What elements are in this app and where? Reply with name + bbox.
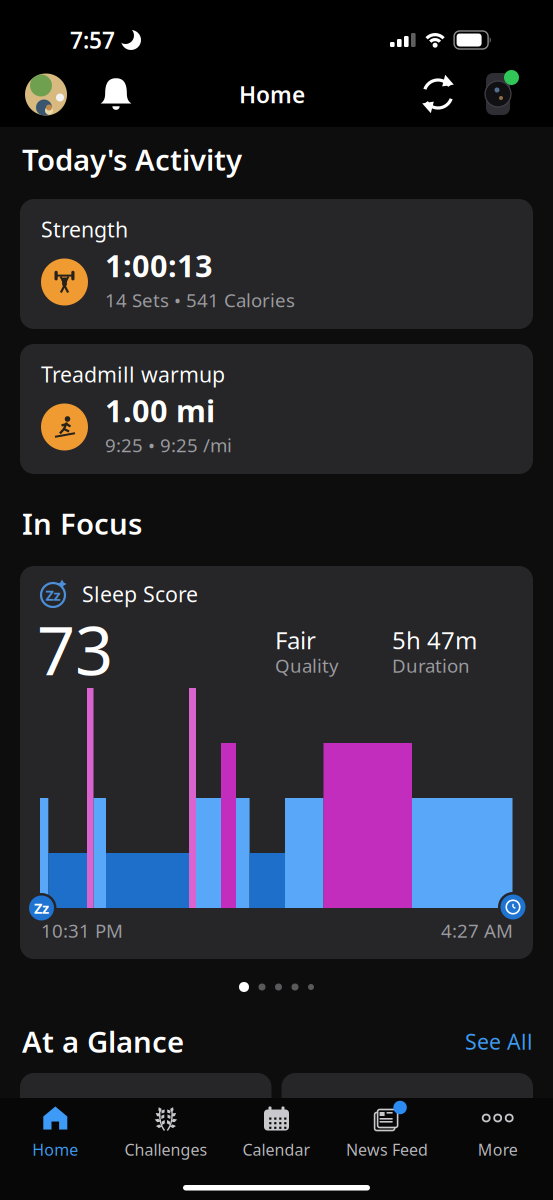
staticText: News Feed bbox=[346, 1139, 428, 1160]
staticText: Sleep Score bbox=[82, 580, 198, 608]
button[interactable]: Glance card bbox=[281, 1073, 533, 1123]
staticText: 10:31 PM bbox=[41, 918, 123, 943]
button[interactable]: News Feed bbox=[332, 1098, 442, 1160]
button[interactable]: Calendar bbox=[221, 1098, 332, 1160]
staticText: 4:27 AM bbox=[441, 918, 513, 943]
button[interactable]: Zz bbox=[20, 566, 533, 959]
button[interactable]: Notifications bbox=[94, 72, 138, 116]
button[interactable]: Glance card bbox=[20, 1073, 271, 1123]
staticText: Quality bbox=[275, 653, 339, 678]
staticText: 7:57 bbox=[70, 25, 115, 55]
staticText: Challenges bbox=[124, 1139, 207, 1160]
staticText: 5h 47m bbox=[392, 624, 477, 656]
staticText: 1:00:13 bbox=[105, 245, 213, 286]
button[interactable]: Device bbox=[483, 71, 513, 117]
staticText: Zz bbox=[34, 898, 49, 918]
button[interactable]: See All bbox=[465, 1027, 533, 1056]
button[interactable]: More bbox=[442, 1098, 553, 1160]
staticText: 1.00 mi bbox=[105, 390, 215, 431]
staticText: 9:25 • 9:25 /mi bbox=[105, 432, 232, 457]
button[interactable]: Profile bbox=[25, 73, 67, 115]
staticText: Treadmill warmup bbox=[41, 360, 225, 388]
staticText: Fair bbox=[275, 624, 316, 656]
button[interactable]: Home bbox=[0, 1098, 111, 1160]
button[interactable]: Challenges bbox=[111, 1098, 221, 1160]
staticText: Duration bbox=[392, 653, 470, 678]
staticText: Calendar bbox=[242, 1139, 310, 1160]
staticText: Home bbox=[239, 79, 305, 109]
staticText: At a Glance bbox=[22, 1022, 184, 1061]
staticText: In Focus bbox=[22, 504, 142, 543]
staticText: Home bbox=[32, 1139, 78, 1160]
staticText: Today's Activity bbox=[22, 140, 242, 179]
staticText: 14 Sets • 541 Calories bbox=[105, 287, 295, 312]
button[interactable]: Sync bbox=[418, 74, 458, 114]
staticText: See All bbox=[465, 1027, 533, 1056]
staticText: 73 bbox=[37, 605, 113, 693]
staticText: Strength bbox=[41, 215, 128, 243]
button[interactable]: Treadmill warmup bbox=[20, 344, 533, 474]
staticText: Zz bbox=[45, 585, 60, 605]
button[interactable]: Strength bbox=[20, 199, 533, 329]
staticText: More bbox=[478, 1139, 518, 1160]
